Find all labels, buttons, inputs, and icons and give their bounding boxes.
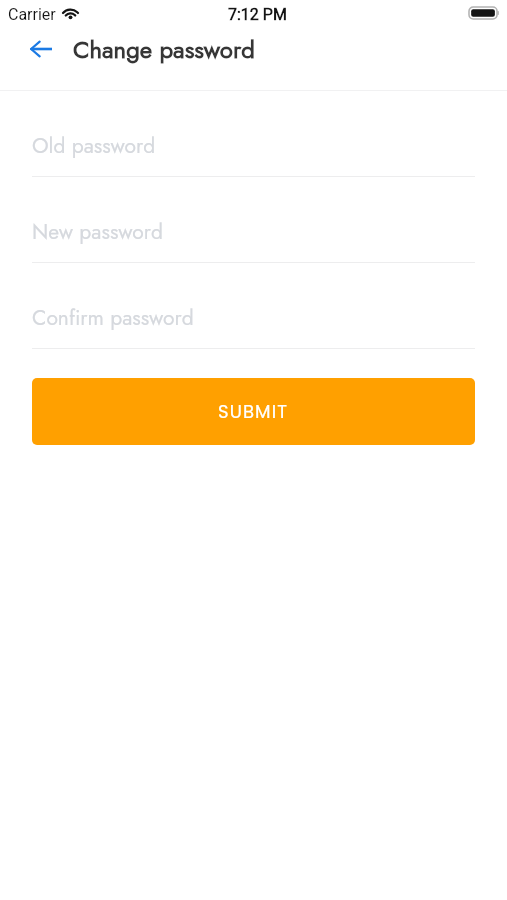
staticText: New password (32, 217, 163, 247)
staticText: Old password (32, 131, 156, 161)
button[interactable]: SUBMIT (32, 378, 475, 445)
staticText: SUBMIT (218, 399, 289, 424)
staticText: Carrier (8, 5, 56, 24)
button[interactable]: Back (24, 29, 58, 69)
staticText: 7:12 PM (228, 5, 287, 24)
button[interactable]: Confirm password (32, 289, 475, 350)
button[interactable]: Old password (32, 117, 475, 178)
button[interactable]: New password (32, 203, 475, 264)
staticText: Change password (73, 32, 255, 67)
staticText: Confirm password (32, 303, 194, 333)
